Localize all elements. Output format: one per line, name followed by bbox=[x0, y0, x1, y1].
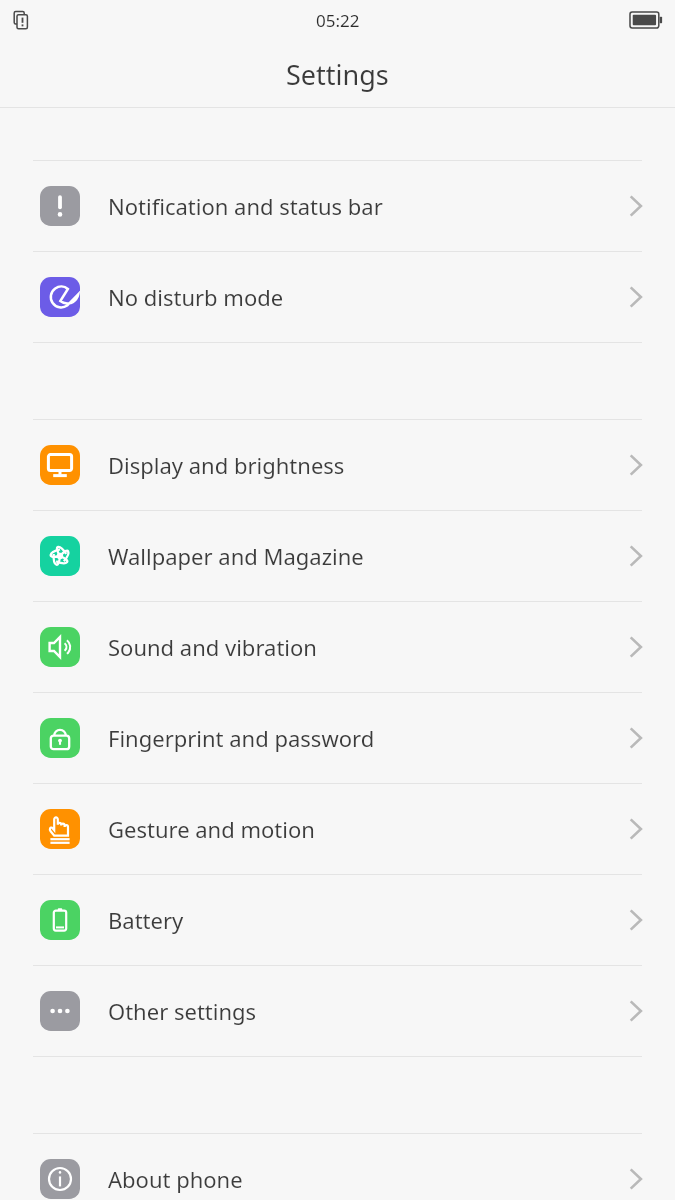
button[interactable]: Gesture and motion bbox=[0, 784, 675, 874]
button[interactable]: Other settings bbox=[0, 966, 675, 1056]
button[interactable]: No disturb mode bbox=[0, 252, 675, 342]
button[interactable]: Notification and status bar bbox=[0, 161, 675, 251]
button[interactable]: Sound and vibration bbox=[0, 602, 675, 692]
button[interactable]: Fingerprint and password bbox=[0, 693, 675, 783]
staticText: Settings bbox=[286, 56, 389, 93]
staticText: Gesture and motion bbox=[108, 814, 628, 844]
staticText: No disturb mode bbox=[108, 282, 628, 312]
staticText: Fingerprint and password bbox=[108, 723, 628, 753]
staticText: Sound and vibration bbox=[108, 632, 628, 662]
staticText: Battery bbox=[108, 905, 628, 935]
staticText: Display and brightness bbox=[108, 450, 628, 480]
staticText: 05:22 bbox=[316, 9, 360, 32]
button[interactable]: Wallpaper and Magazine bbox=[0, 511, 675, 601]
staticText: Wallpaper and Magazine bbox=[108, 541, 628, 571]
staticText: Notification and status bar bbox=[108, 191, 628, 221]
staticText: Other settings bbox=[108, 996, 628, 1026]
other: SIM card alert bbox=[11, 10, 31, 30]
staticText: About phone bbox=[108, 1164, 628, 1194]
other: Battery full bbox=[630, 12, 662, 28]
button[interactable]: About phone bbox=[0, 1134, 675, 1200]
button[interactable]: Display and brightness bbox=[0, 420, 675, 510]
button[interactable]: Battery bbox=[0, 875, 675, 965]
